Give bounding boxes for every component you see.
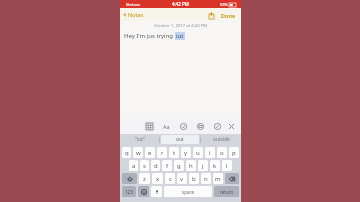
button[interactable]: i	[205, 147, 215, 158]
button[interactable]: w	[133, 147, 143, 158]
staticText: l	[226, 162, 228, 170]
button[interactable]: r	[157, 147, 167, 158]
button[interactable]: Shift	[122, 173, 137, 184]
staticText: n	[204, 175, 208, 183]
staticText: u	[196, 149, 200, 157]
staticText: d	[154, 162, 158, 170]
staticText: i	[209, 149, 211, 157]
button[interactable]: outside	[202, 135, 240, 144]
staticText: y	[184, 149, 188, 157]
staticText: t	[173, 149, 176, 157]
button[interactable]: h	[186, 160, 196, 171]
staticText: a	[132, 162, 136, 170]
staticText: iut	[176, 32, 184, 40]
staticText: 53%	[220, 2, 228, 7]
button[interactable]: o	[217, 147, 227, 158]
staticText: r	[161, 149, 164, 157]
staticText: b	[192, 175, 196, 183]
button[interactable]: y	[181, 147, 191, 158]
staticText: out	[176, 136, 184, 143]
button[interactable]: g	[174, 160, 184, 171]
button[interactable]: Draw	[213, 122, 222, 131]
button[interactable]: d	[151, 160, 160, 171]
button[interactable]: Close keyboard	[227, 122, 236, 131]
staticText: z	[143, 175, 146, 183]
button[interactable]: u	[193, 147, 203, 158]
staticText: v	[180, 175, 184, 183]
staticText: m	[215, 175, 221, 183]
button[interactable]: Camera	[196, 122, 205, 131]
staticText: f	[166, 162, 169, 170]
staticText: k	[213, 162, 217, 170]
button[interactable]: t	[169, 147, 179, 158]
button[interactable]: Aa	[162, 122, 171, 131]
button[interactable]: c	[165, 173, 175, 184]
button[interactable]: Backspace	[225, 173, 239, 184]
staticText: p	[232, 149, 236, 157]
button[interactable]: 123	[122, 186, 136, 197]
staticText: Verizon	[126, 2, 141, 7]
staticText: outside	[213, 136, 230, 143]
button[interactable]: e	[145, 147, 155, 158]
staticText: x	[156, 175, 160, 183]
button[interactable]: l	[222, 160, 232, 171]
staticText: "iut"	[135, 136, 145, 143]
staticText: g	[177, 162, 181, 170]
staticText: Done	[221, 12, 236, 19]
button[interactable]: b	[189, 173, 199, 184]
button[interactable]: Notes	[123, 11, 144, 18]
staticText: October 1, 2017 at 4:42 PM	[120, 23, 241, 29]
button[interactable]: Table	[145, 122, 154, 131]
staticText: c	[169, 175, 172, 183]
button[interactable]: Checklist	[179, 122, 188, 131]
button[interactable]: Done	[220, 12, 237, 19]
button[interactable]: out	[161, 135, 199, 144]
staticText: 4:42 PM	[172, 1, 189, 7]
staticText: w	[136, 149, 141, 157]
button[interactable]: n	[201, 173, 211, 184]
button[interactable]: space	[164, 186, 212, 197]
button[interactable]: q	[122, 147, 131, 158]
button[interactable]: v	[177, 173, 187, 184]
staticText: return	[220, 189, 234, 195]
button[interactable]: m	[213, 173, 223, 184]
staticText: Aa	[163, 123, 170, 130]
staticText: Hey I'm jus trying	[124, 32, 175, 40]
button[interactable]: "iut"	[121, 135, 158, 144]
staticText: space	[182, 189, 195, 195]
button[interactable]: j	[198, 160, 208, 171]
staticText: s	[143, 162, 146, 170]
button[interactable]: Dictation	[151, 186, 162, 197]
staticText: q	[125, 149, 129, 157]
staticText: e	[148, 149, 152, 157]
button[interactable]: p	[229, 147, 239, 158]
button[interactable]: return	[214, 186, 239, 197]
button[interactable]: a	[129, 160, 138, 171]
button[interactable]: Emoji	[138, 186, 149, 197]
staticText: o	[220, 149, 224, 157]
button[interactable]: s	[140, 160, 149, 171]
button[interactable]: z	[139, 173, 150, 184]
button[interactable]: x	[152, 173, 163, 184]
staticText: h	[189, 162, 193, 170]
button[interactable]: f	[162, 160, 172, 171]
button[interactable]: k	[210, 160, 220, 171]
staticText: Notes	[128, 11, 144, 18]
button[interactable]: Share	[206, 10, 216, 20]
staticText: j	[202, 162, 204, 170]
staticText: 123	[125, 189, 133, 195]
